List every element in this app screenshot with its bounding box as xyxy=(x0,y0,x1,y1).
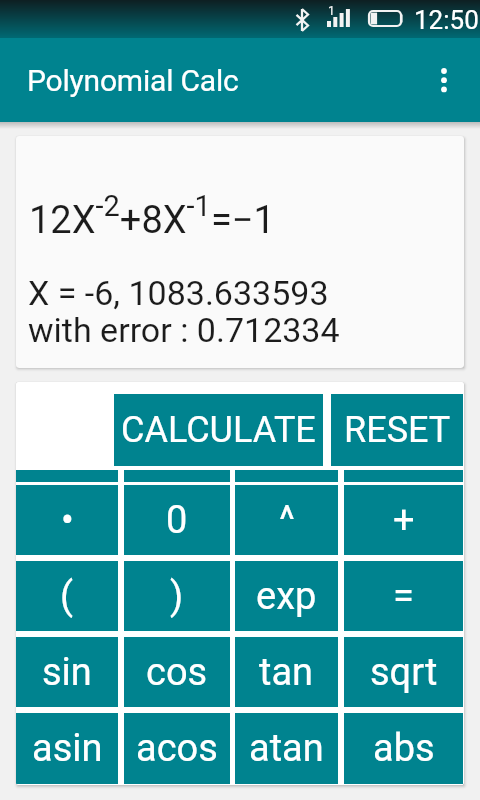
button[interactable]: • xyxy=(16,485,118,555)
button[interactable]: abs xyxy=(344,713,463,784)
staticText: atan xyxy=(249,726,324,771)
staticText: 1 xyxy=(328,4,335,18)
staticText: 0 xyxy=(166,498,188,543)
staticText: = xyxy=(393,574,414,619)
staticText: tan xyxy=(259,650,314,695)
staticText: RESET xyxy=(344,409,451,451)
button[interactable]: 0 xyxy=(124,485,230,555)
staticText: ^ xyxy=(279,498,295,543)
button[interactable]: atan xyxy=(235,713,338,784)
button[interactable]: ^ xyxy=(235,485,338,555)
staticText: CALCULATE xyxy=(121,409,316,451)
staticText: asin xyxy=(32,726,103,771)
button[interactable]: asin xyxy=(16,713,118,784)
staticText: 12:50 xyxy=(414,5,479,35)
staticText: exp xyxy=(256,574,317,619)
button[interactable] xyxy=(420,56,468,104)
staticText: sin xyxy=(42,650,92,695)
staticText: ) xyxy=(170,574,184,619)
button[interactable]: ( xyxy=(16,561,118,631)
button[interactable]: CALCULATE xyxy=(114,394,323,466)
staticText: cos xyxy=(146,650,208,695)
button[interactable]: acos xyxy=(124,713,230,784)
staticText: sqrt xyxy=(370,650,438,695)
button[interactable]: sqrt xyxy=(344,637,463,707)
staticText: ( xyxy=(60,574,74,619)
staticText: • xyxy=(61,498,74,543)
button[interactable]: + xyxy=(344,485,463,555)
button[interactable]: tan xyxy=(235,637,338,707)
button[interactable]: ) xyxy=(124,561,230,631)
staticText: abs xyxy=(373,726,435,771)
staticText: acos xyxy=(136,726,218,771)
button[interactable]: exp xyxy=(235,561,338,631)
button[interactable]: RESET xyxy=(331,394,463,466)
button[interactable]: cos xyxy=(124,637,230,707)
staticText: + xyxy=(393,498,415,543)
button[interactable]: = xyxy=(344,561,463,631)
button[interactable]: sin xyxy=(16,637,118,707)
staticText: X = -6, 1083.633593 xyxy=(28,273,329,313)
staticText: with error : 0.712334 xyxy=(28,310,340,350)
staticText: Polynomial Calc xyxy=(27,63,239,98)
staticText: 12X-2+8X-1=−1 xyxy=(29,189,275,242)
